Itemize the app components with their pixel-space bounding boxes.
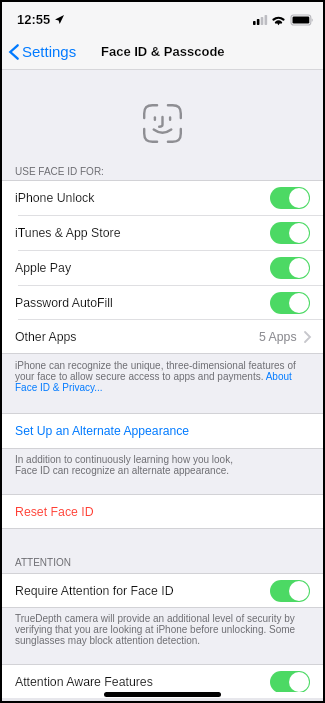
staticText: Settings <box>22 43 77 60</box>
staticText: ATTENTION <box>15 557 71 568</box>
staticText: Face ID & Passcode <box>101 44 225 59</box>
button[interactable]: Toggle, on <box>270 222 310 244</box>
button[interactable]: iTunes & App Store <box>15 216 310 250</box>
other: Location active <box>55 15 64 24</box>
button[interactable]: Other Apps <box>15 320 311 353</box>
staticText: USE FACE ID FOR: <box>15 166 104 177</box>
button[interactable]: Password AutoFill <box>15 286 310 319</box>
button[interactable]: Toggle, on <box>270 292 310 314</box>
staticText: In addition to continuously learning how… <box>15 454 233 476</box>
other: Battery full <box>291 15 314 25</box>
button[interactable]: Toggle, on <box>270 580 310 602</box>
staticText: Attention Aware Features <box>15 675 153 689</box>
button[interactable]: Reset Face ID <box>15 495 323 528</box>
other: Cellular signal <box>253 15 267 25</box>
button[interactable]: Attention Aware Features <box>15 665 310 698</box>
button[interactable]: Set Up an Alternate Appearance <box>15 414 323 448</box>
button[interactable]: Settings <box>9 43 77 60</box>
staticText: Password AutoFill <box>15 296 113 310</box>
button[interactable]: Require Attention for Face ID <box>15 574 310 607</box>
button[interactable]: iPhone Unlock <box>15 181 310 215</box>
staticText: TrueDepth camera will provide an additio… <box>15 613 307 646</box>
button[interactable]: Toggle, on <box>270 187 310 209</box>
staticText: iPhone can recognize the unique, three-d… <box>15 360 307 393</box>
staticText: Reset Face ID <box>15 505 94 519</box>
staticText: 5 Apps <box>259 330 297 344</box>
staticText: Require Attention for Face ID <box>15 584 174 598</box>
button[interactable]: Toggle, on <box>270 257 310 279</box>
staticText: iTunes & App Store <box>15 226 121 240</box>
staticText: Set Up an Alternate Appearance <box>15 424 190 438</box>
button[interactable]: Apple Pay <box>15 251 310 285</box>
staticText: Apple Pay <box>15 261 72 275</box>
other: Wi-Fi <box>271 15 286 25</box>
staticText: 12:55 <box>17 12 51 27</box>
staticText: Other Apps <box>15 330 77 344</box>
button[interactable]: Toggle, on <box>270 671 310 693</box>
staticText: iPhone Unlock <box>15 191 95 205</box>
